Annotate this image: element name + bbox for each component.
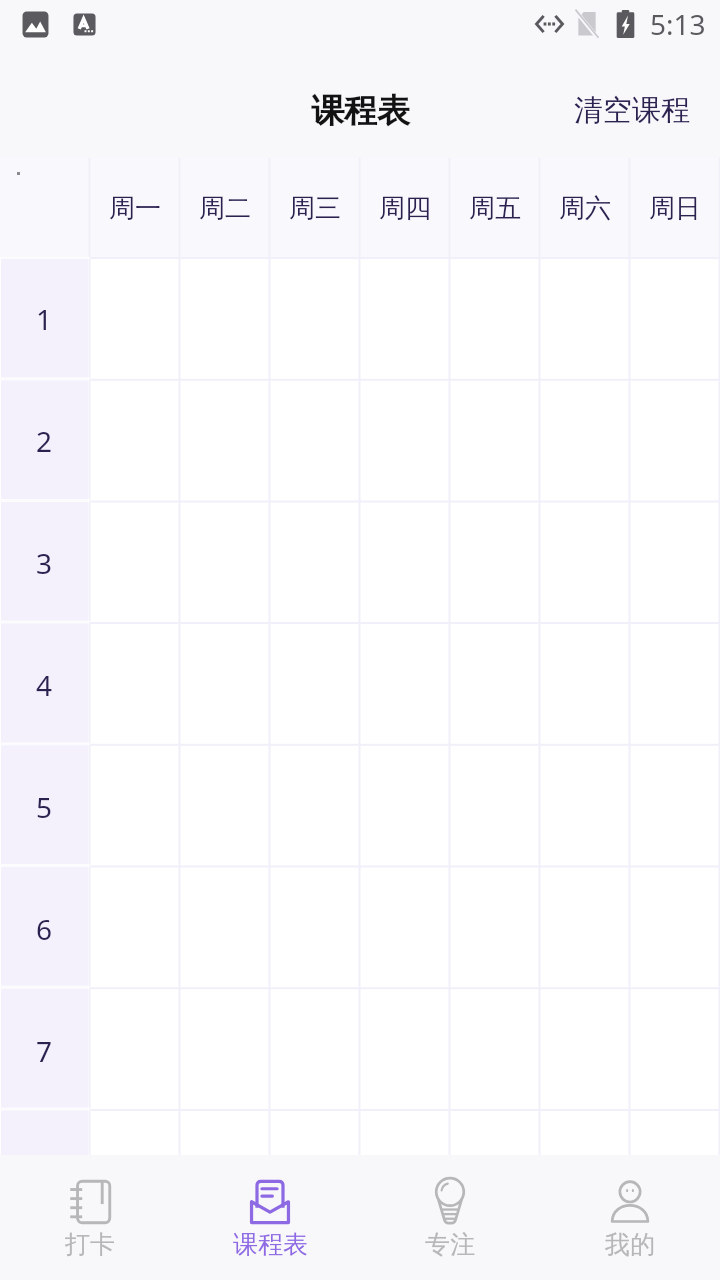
staticText: 我的 (605, 1229, 655, 1260)
button[interactable]: 我的 (540, 1155, 720, 1280)
button[interactable]: 周一 (90, 158, 180, 258)
button[interactable]: 周五 (450, 158, 540, 258)
button[interactable]: 清空课程 (550, 78, 720, 143)
staticText: 清空课程 (574, 92, 690, 129)
button[interactable]: 周三 (270, 158, 360, 258)
staticText: 周日 (649, 192, 701, 225)
button[interactable]: 周四 (360, 158, 450, 258)
staticText: 7 (36, 1032, 53, 1070)
staticText: 周二 (199, 192, 251, 225)
button[interactable]: 周日 (630, 158, 720, 258)
button[interactable]: 打卡 (0, 1155, 180, 1280)
staticText: 周六 (559, 192, 611, 225)
staticText: 周五 (469, 192, 521, 225)
staticText: 课程表 (233, 1229, 308, 1260)
button[interactable]: 周六 (540, 158, 630, 258)
button[interactable]: 课程表 (180, 1155, 360, 1280)
staticText: 4 (36, 666, 53, 704)
staticText: 周三 (289, 192, 341, 225)
staticText: 课程表 (311, 90, 410, 132)
staticText: 1 (36, 300, 53, 338)
button[interactable]: 专注 (360, 1155, 540, 1280)
staticText: 打卡 (65, 1229, 115, 1260)
staticText: 专注 (425, 1229, 475, 1260)
staticText: 周四 (379, 192, 431, 225)
staticText: 6 (36, 910, 53, 948)
staticText: 5 (36, 788, 53, 826)
staticText: 周一 (109, 192, 161, 225)
staticText: 3 (36, 544, 53, 582)
staticText: 5:13 (650, 5, 706, 43)
button[interactable]: 周二 (180, 158, 270, 258)
staticText: 2 (36, 422, 53, 460)
